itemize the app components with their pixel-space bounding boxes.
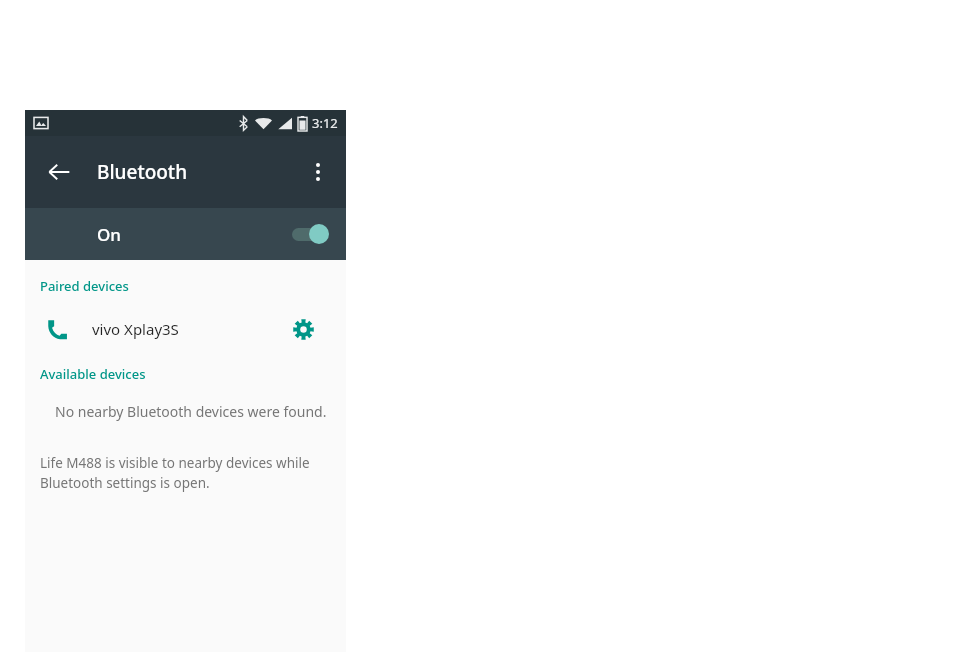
staticText: Available devices	[40, 365, 146, 383]
button[interactable]: More options	[298, 152, 338, 192]
staticText: vivo Xplay3S	[92, 319, 179, 339]
button[interactable]: Back	[39, 152, 79, 192]
staticText: Life M488 is visible to nearby devices w…	[40, 454, 322, 492]
button[interactable]: vivo Xplay3S	[25, 305, 346, 353]
staticText: On	[97, 223, 121, 246]
button[interactable]: On	[25, 208, 346, 260]
staticText: Bluetooth	[97, 159, 188, 185]
staticText: No nearby Bluetooth devices were found.	[55, 402, 327, 421]
staticText: Paired devices	[40, 277, 129, 295]
button[interactable]: Device settings	[286, 312, 320, 346]
staticText: 3:12	[312, 114, 338, 132]
